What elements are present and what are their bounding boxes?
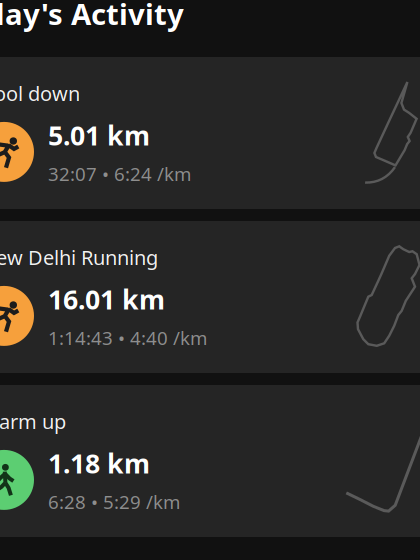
button[interactable]: Warm up xyxy=(0,385,420,537)
button[interactable]: Cool down xyxy=(0,57,420,209)
staticText: Cool down xyxy=(0,80,80,107)
staticText: 32:07 • 6:24 /km xyxy=(48,161,191,186)
staticText: 6:28 • 5:29 /km xyxy=(48,489,180,514)
staticText: Warm up xyxy=(0,408,66,435)
staticText: 1:14:43 • 4:40 /km xyxy=(48,325,207,350)
staticText: Today's Activity xyxy=(0,0,184,33)
button[interactable]: New Delhi Running xyxy=(0,221,420,373)
staticText: New Delhi Running xyxy=(0,244,158,271)
staticText: 1.18 km xyxy=(48,446,150,481)
staticText: 16.01 km xyxy=(48,282,165,317)
staticText: 5.01 km xyxy=(48,118,150,153)
